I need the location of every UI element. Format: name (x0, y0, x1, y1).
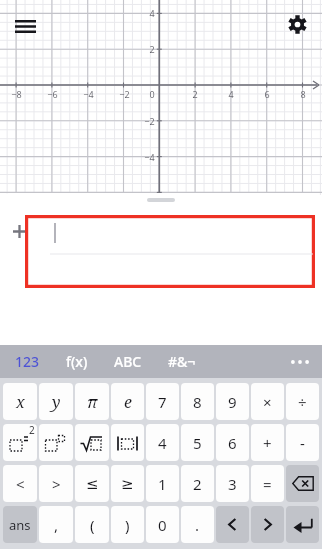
button[interactable]: ≥ (111, 465, 144, 502)
staticText: 2 (29, 424, 35, 437)
button[interactable]: ans (3, 506, 37, 543)
button[interactable]: ) (111, 506, 144, 543)
staticText: f(x) (66, 352, 88, 371)
button[interactable]: . (181, 506, 214, 543)
staticText: x (16, 391, 25, 413)
button[interactable]: 1 (146, 465, 179, 502)
button[interactable]: Settings (280, 7, 314, 41)
button[interactable]: - (286, 424, 319, 461)
button[interactable]: x (3, 383, 37, 420)
staticText: −6 (47, 88, 58, 100)
staticText: 2 (192, 88, 198, 100)
button[interactable]: 123 (12, 345, 43, 378)
staticText: . (195, 515, 200, 535)
staticText: 0 (158, 515, 167, 535)
button[interactable]: Power (39, 424, 73, 461)
button[interactable]: ABC (111, 345, 145, 378)
staticText: π (87, 391, 98, 413)
button[interactable]: ÷ (286, 383, 319, 420)
button[interactable]: #&¬ (165, 345, 199, 378)
staticText: 6 (228, 433, 237, 453)
button[interactable]: f(x) (63, 345, 91, 378)
staticText: - (300, 433, 305, 453)
button[interactable]: , (39, 506, 73, 543)
staticText: −2 (119, 88, 130, 100)
button[interactable]: Absolute value (111, 424, 144, 461)
staticText: −4 (83, 88, 94, 100)
button[interactable]: 0 (146, 506, 179, 543)
staticText: ABC (114, 352, 142, 371)
staticText: < (16, 474, 25, 494)
staticText: 123 (15, 352, 40, 371)
button[interactable]: Enter (286, 506, 319, 543)
button[interactable]: 3 (216, 465, 249, 502)
button[interactable]: e (111, 383, 144, 420)
button[interactable]: 8 (181, 383, 214, 420)
button[interactable]: Drag handle (147, 198, 175, 202)
button[interactable]: Backspace (286, 465, 319, 502)
staticText: ÷ (298, 392, 307, 412)
button[interactable]: < (3, 465, 37, 502)
staticText: 6 (264, 88, 270, 100)
staticText: + (263, 433, 272, 453)
button[interactable]: + (251, 424, 284, 461)
staticText: > (52, 474, 61, 494)
button[interactable]: ( (75, 506, 109, 543)
staticText: 4 (158, 433, 167, 453)
staticText: = (263, 474, 272, 494)
button[interactable]: 2 (181, 465, 214, 502)
staticText: e (124, 391, 132, 413)
staticText: ≤ (86, 475, 99, 492)
button[interactable]: Square (3, 424, 37, 461)
staticText: 0 (149, 88, 155, 100)
button[interactable]: > (39, 465, 73, 502)
staticText: −4 (144, 151, 155, 163)
staticText: 7 (158, 392, 167, 412)
staticText: 8 (300, 88, 306, 100)
staticText: 1 (158, 474, 167, 494)
staticText: 3 (228, 474, 237, 494)
button[interactable]: Menu (8, 9, 42, 43)
button[interactable]: 5 (181, 424, 214, 461)
staticText: × (263, 392, 272, 412)
button[interactable]: 6 (216, 424, 249, 461)
button[interactable]: Add expression (6, 218, 32, 244)
staticText: −8 (11, 88, 22, 100)
staticText: −2 (144, 115, 155, 127)
button[interactable] (25, 215, 315, 288)
staticText: , (54, 515, 59, 535)
button[interactable]: Move right (251, 506, 284, 543)
button[interactable]: × (251, 383, 284, 420)
button[interactable]: 4 (146, 424, 179, 461)
button[interactable]: = (251, 465, 284, 502)
staticText: ≥ (121, 475, 134, 492)
button[interactable]: Square root (75, 424, 109, 461)
staticText: 2 (193, 474, 202, 494)
staticText: 2 (149, 43, 155, 55)
button[interactable]: y (39, 383, 73, 420)
button[interactable]: ≤ (75, 465, 109, 502)
staticText: 4 (228, 88, 234, 100)
staticText: 4 (149, 7, 155, 19)
staticText: 8 (193, 392, 202, 412)
button[interactable]: 9 (216, 383, 249, 420)
staticText: #&¬ (168, 352, 196, 371)
staticText: ans (9, 516, 31, 534)
staticText: 5 (193, 433, 202, 453)
button[interactable]: 7 (146, 383, 179, 420)
button[interactable]: More options (282, 345, 318, 378)
staticText: ) (125, 515, 130, 535)
staticText: ( (90, 515, 95, 535)
staticText: y (52, 391, 61, 413)
button[interactable]: π (75, 383, 109, 420)
staticText: 9 (228, 392, 237, 412)
button[interactable]: Move left (216, 506, 249, 543)
